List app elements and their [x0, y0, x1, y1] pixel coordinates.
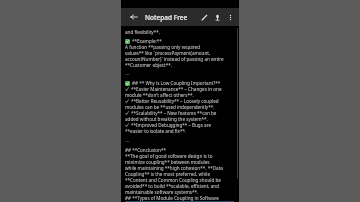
staticText: ## ** Why is Low Coupling Important?**: [132, 80, 221, 86]
staticText: **Content and Common Coupling should be: [125, 177, 221, 183]
staticText: ## **Conclusion**: [125, 147, 167, 153]
staticText: accountNumber)` instead of passing an en…: [125, 56, 224, 62]
staticText: Engineering**: [125, 201, 157, 202]
staticText: ---: [125, 138, 130, 144]
staticText: **Better Reusability** – Loosely coupled: [131, 98, 219, 104]
staticText: ## **Types of Module Coupling in Softwar…: [125, 195, 219, 201]
staticText: Coupling** is the most preferred, while: [125, 171, 210, 177]
staticText: Notepad Free: [145, 13, 198, 22]
staticText: module **don't affect others**.: [125, 92, 194, 98]
staticText: modules can be **used independently**.: [125, 104, 215, 110]
staticText: ---: [125, 71, 130, 77]
staticText: A function **passing only required: [125, 44, 200, 50]
staticText: **Improved Debugging** – Bugs are: [131, 122, 212, 128]
button[interactable]: Back: [127, 10, 141, 24]
staticText: maintainable software systems**.: [125, 189, 199, 195]
button[interactable]: More options: [224, 11, 237, 24]
staticText: **Scalability** – New features **can be: [131, 110, 217, 116]
staticText: **Easier Maintenance** – Changes in one: [131, 86, 222, 92]
staticText: added without breaking the system**.: [125, 116, 208, 122]
button[interactable]: Voice input: [211, 11, 224, 24]
staticText: **The goal of good software design is to: [125, 153, 213, 159]
staticText: avoided** to build **scalable, efficient…: [125, 183, 219, 189]
staticText: values** like `processPayment(amount,: [125, 50, 211, 56]
staticText: and flexibility**.: [125, 29, 160, 35]
staticText: minimize coupling** between modules: [125, 159, 210, 165]
staticText: **Customer object**.: [125, 62, 172, 68]
button[interactable]: Edit: [198, 11, 211, 24]
staticText: while maintaining **high cohesion**. **D…: [125, 165, 223, 171]
staticText: **Example:**: [132, 38, 162, 44]
staticText: **easier to isolate and fix**.: [125, 128, 187, 134]
